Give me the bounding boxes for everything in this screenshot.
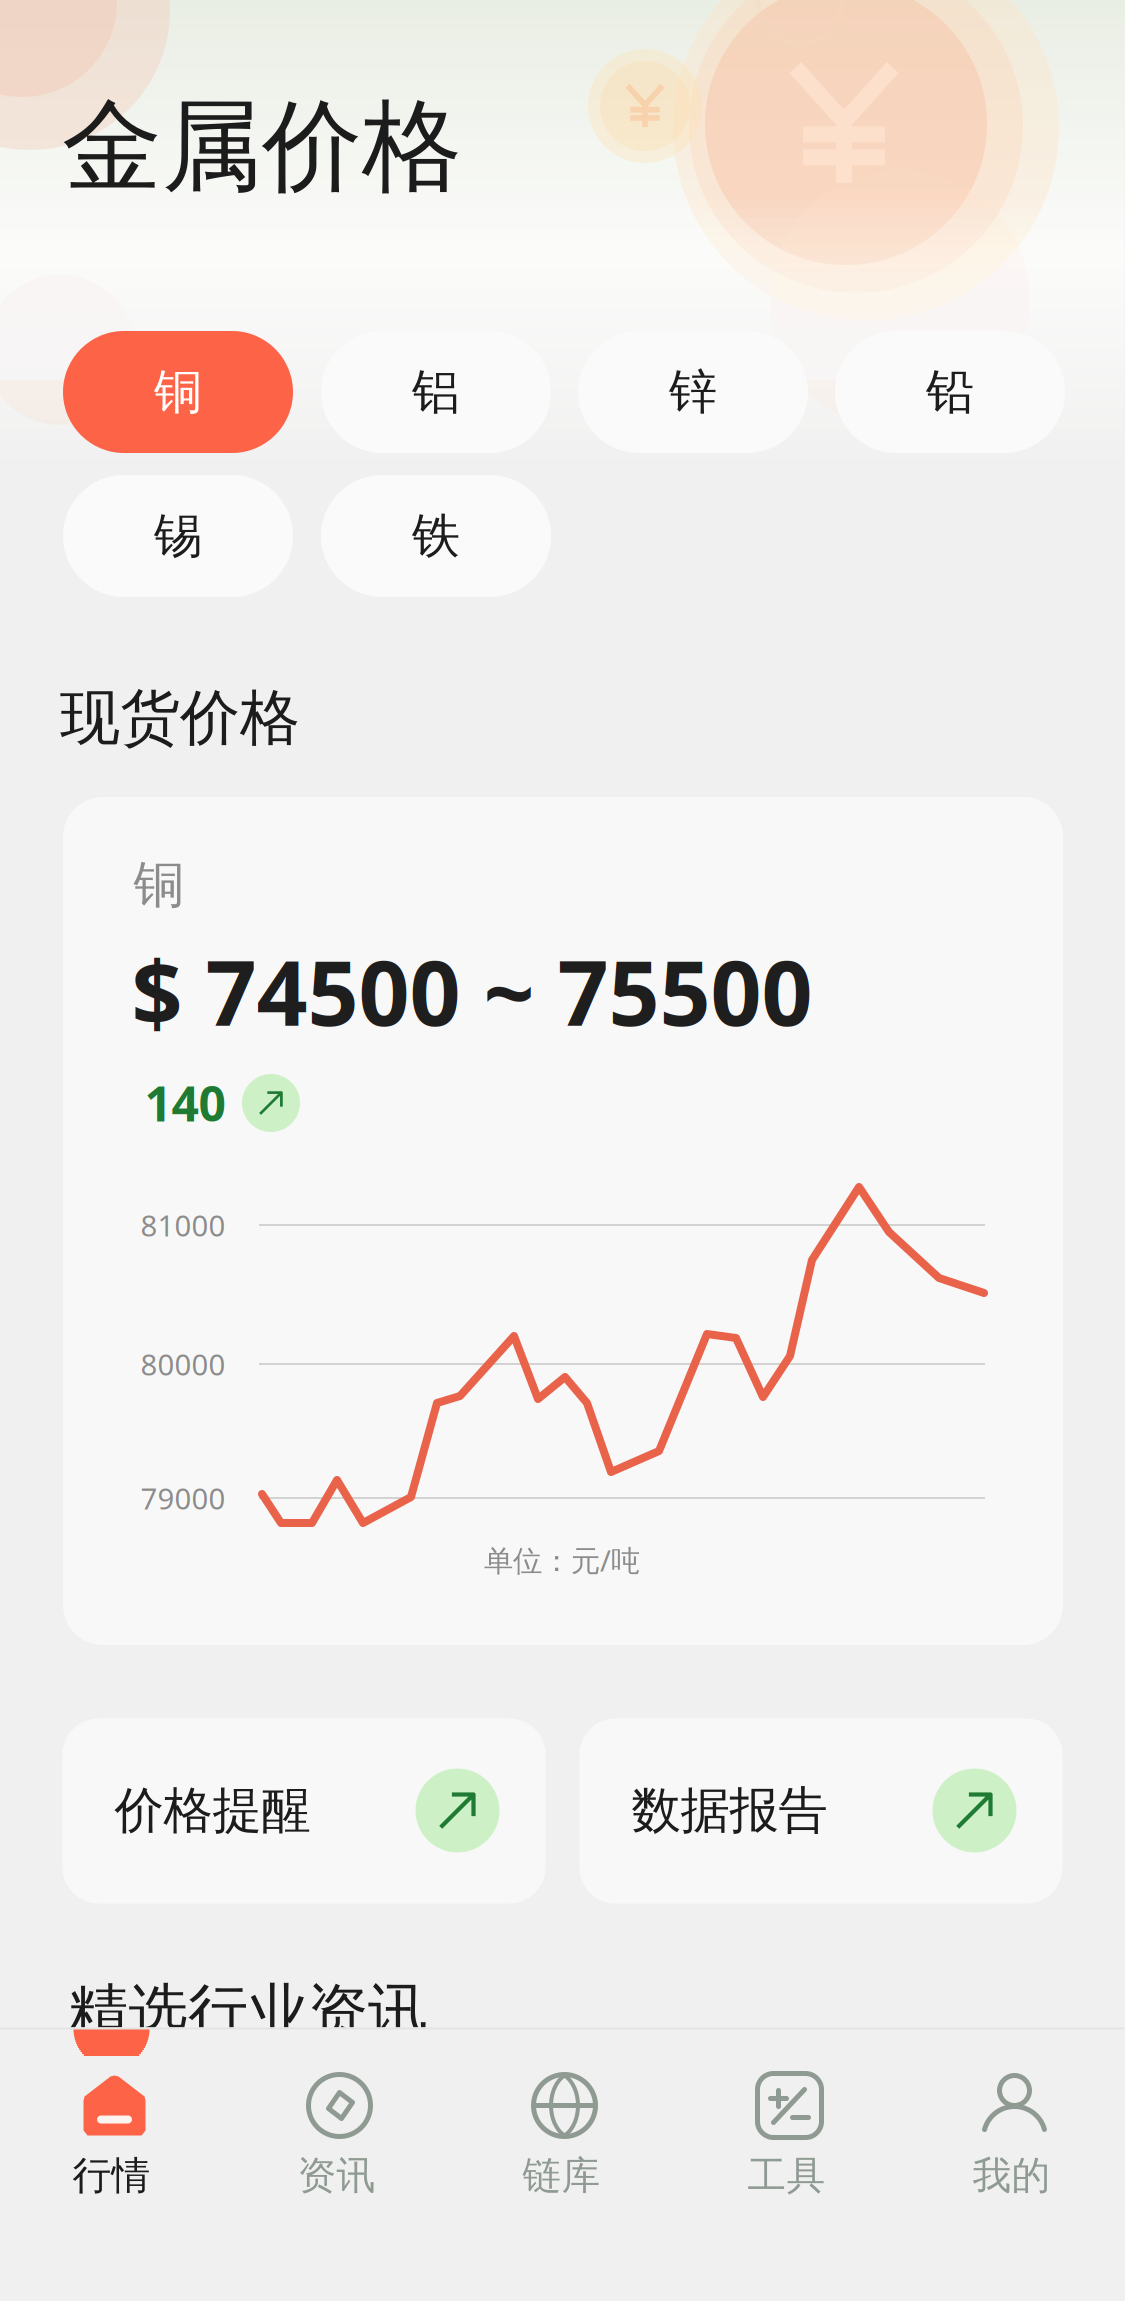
- staticText: 铜: [133, 854, 184, 916]
- staticText: 140: [144, 1071, 225, 1135]
- staticText: 79000: [140, 1478, 225, 1517]
- staticText: 锡: [154, 506, 202, 565]
- staticText: 铜: [154, 362, 202, 421]
- staticText: 金属价格: [62, 86, 462, 208]
- staticText: 铅: [926, 362, 974, 421]
- staticText: 链库: [522, 2152, 600, 2199]
- staticText: 单位：元/吨: [484, 1540, 640, 1579]
- staticText: 行情: [72, 2152, 150, 2199]
- staticText: 81000: [140, 1205, 225, 1244]
- staticText: 我的: [972, 2152, 1050, 2199]
- staticText: 铁: [412, 506, 460, 565]
- button[interactable]: 行情: [0, 2027, 224, 2300]
- button[interactable]: 我的: [899, 2027, 1124, 2300]
- staticText: 工具: [747, 2152, 825, 2199]
- button[interactable]: 铁: [321, 475, 551, 597]
- staticText: 资讯: [297, 2152, 375, 2199]
- button[interactable]: 链库: [449, 2027, 674, 2300]
- button[interactable]: 锡: [63, 475, 293, 597]
- button[interactable]: 铜: [63, 331, 293, 453]
- staticText: 锌: [669, 362, 717, 421]
- staticText: 价格提醒: [114, 1780, 310, 1841]
- staticText: 铝: [412, 362, 460, 421]
- staticText: $ 74500 ~ 75500: [131, 932, 812, 1050]
- staticText: 现货价格: [60, 681, 300, 755]
- button[interactable]: 资讯: [224, 2027, 449, 2300]
- staticText: 数据报告: [631, 1780, 827, 1841]
- staticText: 80000: [140, 1344, 225, 1383]
- staticText: 精选行业资讯: [68, 1975, 428, 2049]
- button[interactable]: 工具: [674, 2027, 899, 2300]
- button[interactable]: 锌: [578, 331, 808, 453]
- button[interactable]: 铅: [835, 331, 1065, 453]
- button[interactable]: 数据报告: [579, 1718, 1062, 1903]
- button[interactable]: 铝: [321, 331, 551, 453]
- button[interactable]: 价格提醒: [62, 1718, 545, 1903]
